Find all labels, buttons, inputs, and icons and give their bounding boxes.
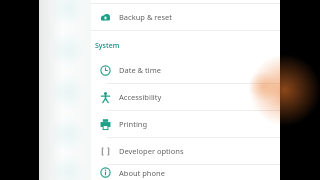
other: Developer options	[91, 146, 119, 157]
button[interactable]: Developer options	[91, 138, 280, 164]
staticText: Accessibility	[119, 92, 162, 102]
other: About phone	[91, 167, 119, 178]
staticText: Developer options	[119, 146, 184, 156]
other: Printing	[91, 119, 119, 130]
staticText: Printing	[119, 119, 148, 129]
button[interactable]: Date & time	[91, 57, 280, 83]
other: Accessibility	[91, 92, 119, 103]
button[interactable]: Backup & reset	[91, 4, 280, 30]
button[interactable]: About phone	[91, 165, 280, 180]
staticText: Backup & reset	[119, 12, 173, 22]
staticText: Date & time	[119, 65, 161, 75]
staticText: System	[95, 41, 120, 51]
other: Date & time	[91, 65, 119, 76]
staticText: About phone	[119, 168, 165, 178]
button[interactable]: Accessibility	[91, 84, 280, 110]
button[interactable]: Printing	[91, 111, 280, 137]
other: Backup & reset	[91, 12, 119, 23]
